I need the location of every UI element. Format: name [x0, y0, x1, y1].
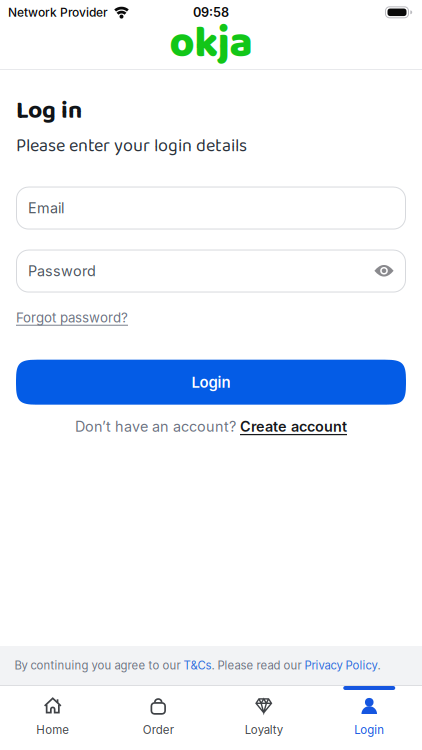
staticText: T&Cs	[183, 659, 211, 672]
button[interactable]: Show password	[374, 265, 394, 278]
staticText: 09:58	[193, 5, 229, 20]
staticText: . Please read our	[211, 659, 304, 672]
staticText: Don’t have an account?	[75, 418, 240, 435]
staticText: Password	[28, 262, 96, 280]
staticText: Order	[143, 723, 174, 737]
button[interactable]: Privacy Policy	[304, 659, 377, 672]
staticText: Home	[36, 723, 69, 737]
staticText: By continuing you agree to our	[14, 659, 183, 672]
staticText: Login	[191, 373, 230, 391]
button[interactable]: Login	[316, 686, 422, 750]
button[interactable]: Home	[0, 686, 105, 750]
staticText: okja	[169, 10, 252, 78]
button[interactable]: Forgot password?	[16, 310, 128, 326]
staticText: Please enter your login details	[16, 132, 247, 160]
button[interactable]: Order	[105, 686, 211, 750]
button[interactable]: Create account	[240, 418, 347, 435]
staticText: Email	[28, 199, 64, 217]
staticText: .	[377, 659, 380, 672]
staticText: Loyalty	[245, 723, 283, 737]
staticText: Privacy Policy	[304, 659, 377, 672]
button[interactable]: T&Cs	[183, 659, 211, 672]
button[interactable]: Login	[16, 360, 406, 405]
staticText: Network Provider	[8, 5, 108, 19]
staticText: Forgot password?	[16, 310, 128, 326]
button[interactable]: Loyalty	[211, 686, 316, 750]
staticText: Login	[354, 723, 384, 737]
staticText: Log in	[16, 91, 82, 131]
staticText: Create account	[240, 418, 347, 435]
